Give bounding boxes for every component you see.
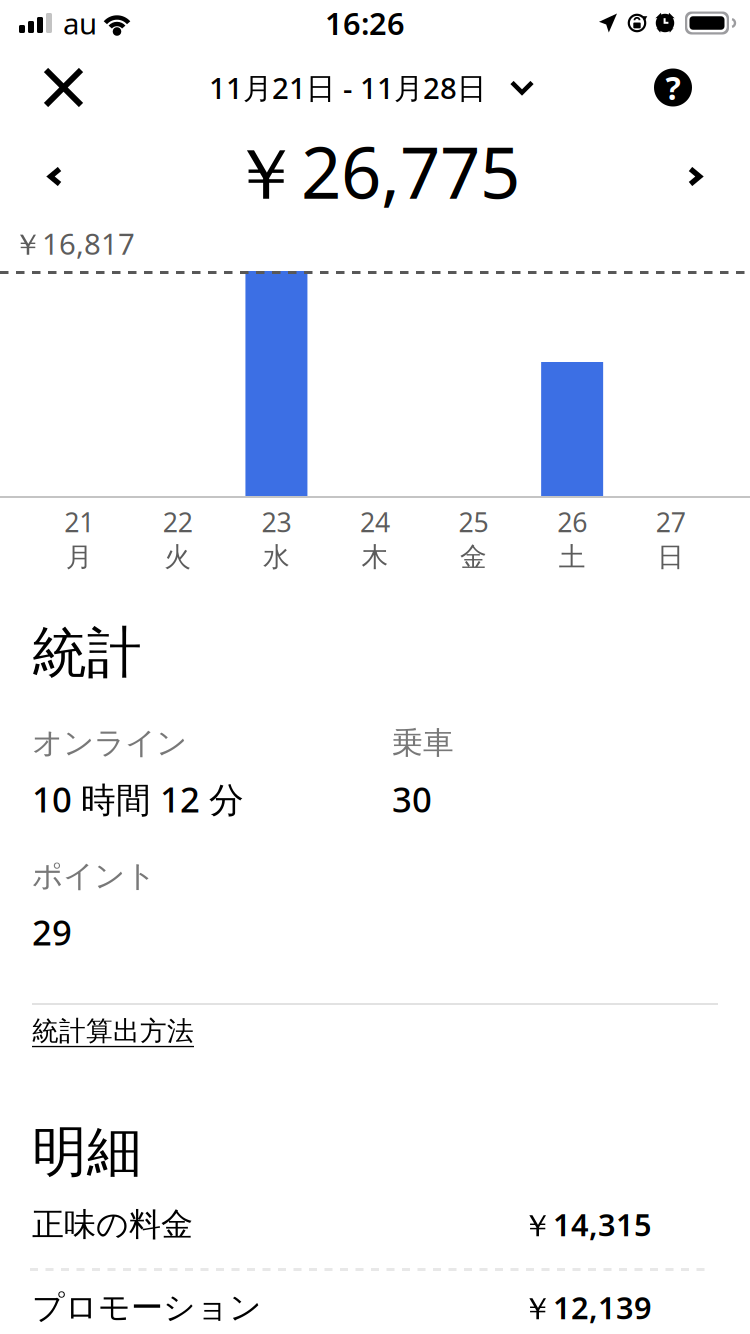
staticText: 21 (64, 504, 94, 540)
staticText: 金 (460, 541, 487, 573)
staticText: 30 (392, 776, 432, 822)
button[interactable]: ヘルプ (622, 46, 692, 129)
staticText: オンライン (32, 724, 187, 762)
staticText: 木 (361, 541, 388, 573)
staticText: 29 (32, 909, 72, 955)
staticText: 統計算出方法 (32, 1015, 194, 1047)
staticText: 25 (459, 504, 489, 540)
staticText: プロモーション (32, 1288, 262, 1327)
staticText: 土 (559, 541, 586, 573)
button[interactable]: 正味の料金 (32, 1194, 718, 1255)
staticText: 10 時間 12 分 (32, 776, 244, 822)
staticText: 27 (656, 504, 686, 540)
staticText: 正味の料金 (32, 1205, 193, 1244)
staticText: ? (665, 66, 680, 109)
staticText: au (63, 3, 97, 42)
button[interactable]: 統計算出方法 (32, 1005, 718, 1057)
staticText: ￥12,139 (522, 1287, 652, 1328)
staticText: 水 (263, 541, 290, 573)
staticText: 11月21日 - 11月28日 (209, 68, 486, 107)
staticText: 火 (164, 541, 191, 573)
staticText: 統計 (32, 619, 142, 686)
button[interactable]: 前の週 (24, 129, 86, 208)
staticText: ポイント (32, 857, 156, 895)
staticText: 乗車 (392, 724, 454, 762)
button[interactable]: プロモーション (32, 1271, 718, 1334)
staticText: 24 (360, 504, 390, 540)
staticText: 月 (66, 541, 93, 573)
staticText: ￥16,817 (13, 224, 135, 263)
staticText: 日 (657, 541, 684, 573)
staticText: ￥14,315 (522, 1204, 652, 1245)
staticText: ￥26,775 (230, 124, 520, 219)
staticText: 23 (261, 504, 291, 540)
staticText: 16:26 (325, 3, 405, 43)
button[interactable]: 11月21日 - 11月28日 (209, 46, 532, 129)
staticText: 22 (163, 504, 193, 540)
button[interactable]: 閉じる (46, 46, 116, 129)
button[interactable]: 次の週 (664, 129, 726, 208)
staticText: 26 (557, 504, 587, 540)
staticText: 明細 (32, 1118, 142, 1185)
